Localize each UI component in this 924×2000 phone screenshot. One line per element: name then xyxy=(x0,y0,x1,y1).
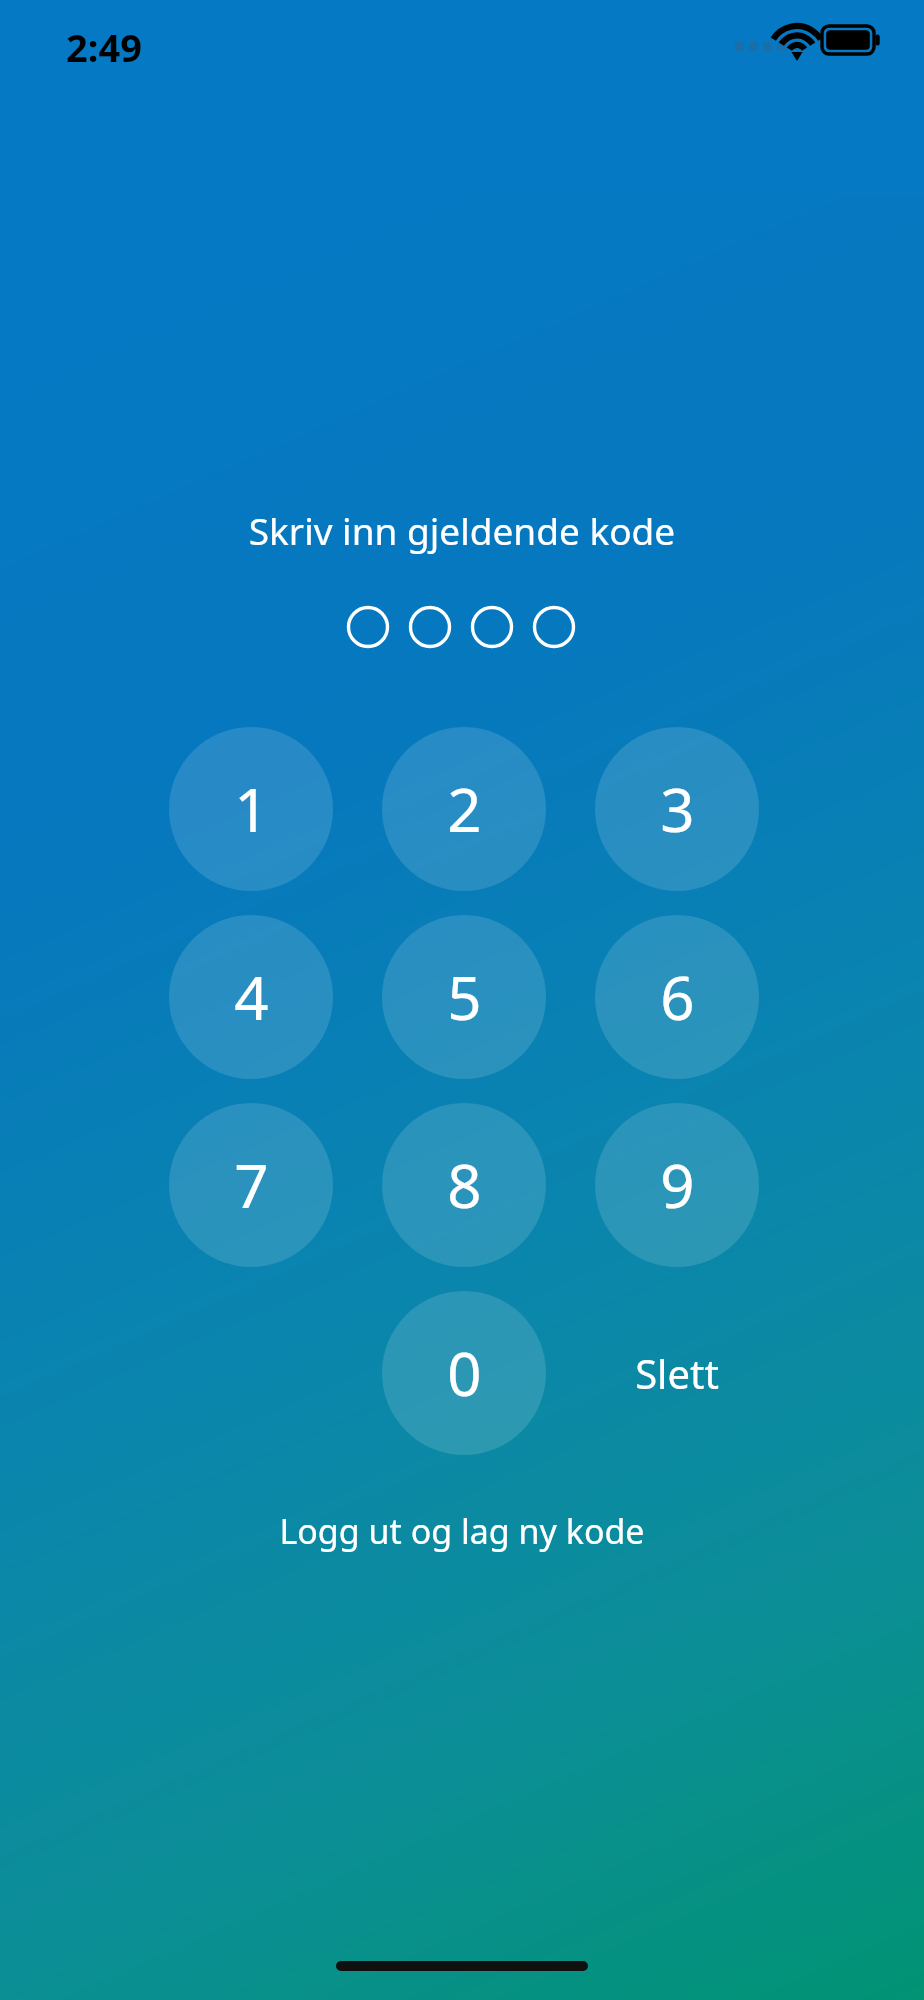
staticText: Logg ut og lag ny kode xyxy=(279,1508,645,1554)
button[interactable]: 9 xyxy=(595,1103,759,1267)
button[interactable]: 3 xyxy=(595,727,759,891)
button[interactable]: Logg ut og lag ny kode xyxy=(0,1496,924,1566)
button[interactable]: 5 xyxy=(382,915,546,1079)
button[interactable]: 2 xyxy=(382,727,546,891)
staticText: 8 xyxy=(447,1144,482,1226)
staticText: 7 xyxy=(234,1144,269,1226)
button[interactable]: 6 xyxy=(595,915,759,1079)
staticText: 9 xyxy=(660,1144,695,1226)
staticText: 0 xyxy=(447,1332,482,1414)
button[interactable]: 4 xyxy=(169,915,333,1079)
staticText: 2:49 xyxy=(66,21,142,73)
button[interactable]: Slett xyxy=(572,1323,782,1423)
staticText: Skriv inn gjeldende kode xyxy=(0,505,924,555)
button[interactable]: 1 xyxy=(169,727,333,891)
staticText: 1 xyxy=(234,768,269,850)
staticText: 5 xyxy=(447,956,482,1038)
staticText: 2 xyxy=(447,768,482,850)
staticText: Slett xyxy=(635,1346,719,1400)
button[interactable]: 0 xyxy=(382,1291,546,1455)
button[interactable]: 8 xyxy=(382,1103,546,1267)
button[interactable]: 7 xyxy=(169,1103,333,1267)
staticText: 6 xyxy=(660,956,695,1038)
staticText: 3 xyxy=(660,768,695,850)
staticText: 4 xyxy=(234,956,269,1038)
